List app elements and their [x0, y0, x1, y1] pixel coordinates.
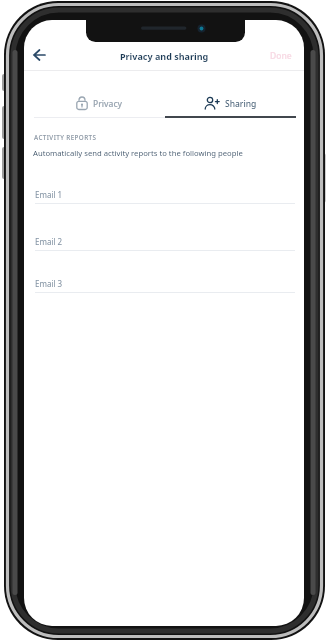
staticText: Automatically send activity reports to t…: [33, 148, 243, 158]
staticText: Privacy: [93, 98, 123, 110]
button[interactable]: Email 1: [34, 184, 296, 204]
button[interactable]: [26, 42, 52, 68]
staticText: Done: [270, 50, 292, 62]
button[interactable]: Privacy: [34, 89, 165, 118]
button[interactable]: Email 3: [34, 273, 296, 293]
staticText: ACTIVITY REPORTS: [34, 133, 97, 142]
button[interactable]: Sharing: [165, 89, 296, 118]
staticText: Email 3: [35, 278, 63, 289]
staticText: Privacy and sharing: [120, 50, 209, 62]
button[interactable]: Email 2: [34, 231, 296, 251]
staticText: Email 2: [35, 236, 63, 247]
staticText: Email 1: [35, 189, 63, 200]
button[interactable]: Done: [264, 47, 298, 64]
staticText: Sharing: [225, 98, 257, 110]
